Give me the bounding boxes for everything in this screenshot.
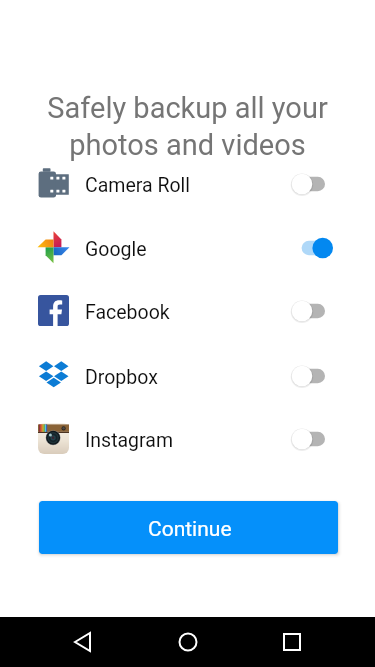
staticText: Camera Roll: [85, 174, 191, 197]
staticText: Google: [85, 238, 147, 261]
button[interactable]: Disabled: [291, 296, 335, 326]
button[interactable]: Home: [168, 617, 208, 667]
staticText: Safely backup all your photos and videos: [0, 91, 375, 162]
button[interactable]: Instagram: [0, 407, 375, 470]
button[interactable]: Disabled: [291, 169, 335, 199]
button[interactable]: Disabled: [291, 424, 335, 454]
button[interactable]: Facebook: [0, 279, 375, 342]
staticText: Dropbox: [85, 366, 158, 389]
staticText: Facebook: [85, 301, 170, 324]
button[interactable]: Google: [0, 216, 375, 279]
button[interactable]: Camera Roll: [0, 152, 375, 215]
button[interactable]: Dropbox: [0, 344, 375, 407]
button[interactable]: Enabled: [291, 233, 335, 263]
button[interactable]: Continue: [39, 501, 338, 554]
button[interactable]: Recent apps: [272, 617, 312, 667]
button[interactable]: Back: [63, 617, 103, 667]
staticText: Continue: [148, 517, 232, 542]
staticText: Instagram: [85, 429, 174, 452]
button[interactable]: Disabled: [291, 361, 335, 391]
